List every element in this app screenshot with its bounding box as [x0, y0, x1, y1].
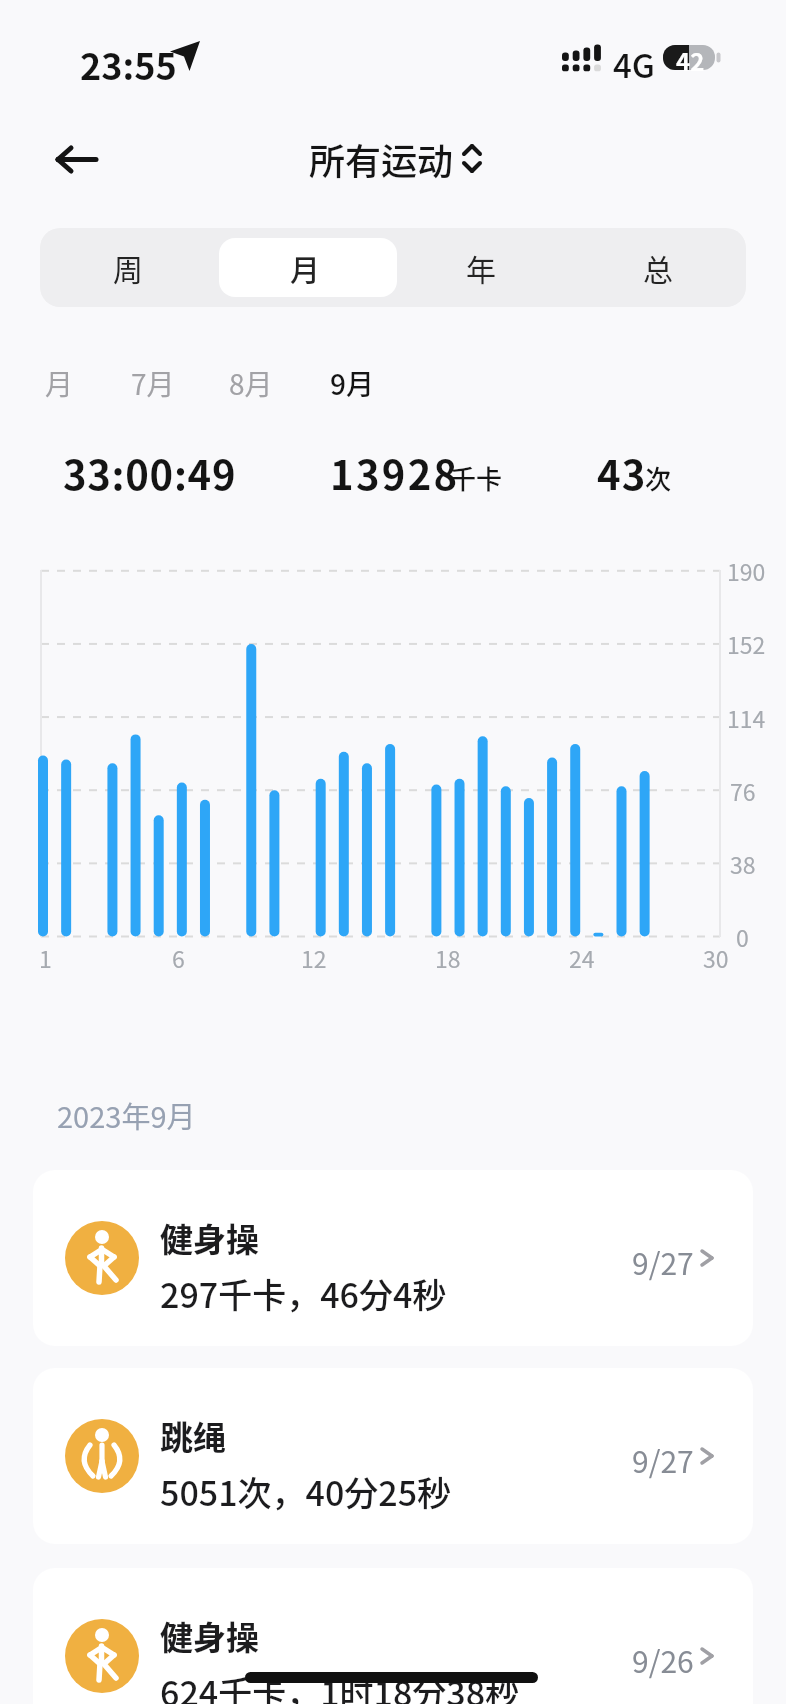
staticText: 1 — [39, 941, 52, 974]
staticText: 9/26 — [632, 1638, 694, 1681]
staticText: 年 — [466, 246, 496, 289]
staticText: 6 — [172, 941, 185, 974]
staticText: 38 — [730, 847, 756, 880]
button[interactable] — [45, 134, 107, 184]
button[interactable]: 月 — [30, 352, 90, 408]
staticText: 297千卡，46分4秒 — [160, 1269, 447, 1318]
button[interactable]: 总 — [570, 228, 746, 307]
staticText: 次 — [645, 459, 672, 497]
staticText: 12 — [301, 941, 327, 974]
staticText: 所有运动 — [309, 133, 454, 185]
staticText: 152 — [727, 627, 766, 660]
button[interactable]: 健身操 — [33, 1170, 753, 1346]
staticText: 9/27 — [632, 1240, 694, 1283]
staticText: 9/27 — [632, 1438, 694, 1481]
staticText: 190 — [727, 554, 766, 587]
staticText: 42 — [676, 43, 705, 78]
staticText: 2023年9月 — [57, 1094, 196, 1136]
staticText: 8月 — [229, 363, 273, 404]
staticText: 18 — [435, 941, 461, 974]
button[interactable]: 7月 — [120, 352, 190, 408]
staticText: 24 — [569, 941, 595, 974]
staticText: 总 — [643, 246, 673, 289]
staticText: 30 — [703, 941, 729, 974]
button[interactable]: 所有运动 — [300, 132, 490, 186]
staticText: 33:00:49 — [63, 444, 237, 502]
staticText: 0 — [736, 920, 749, 953]
button[interactable]: 跳绳 — [33, 1368, 753, 1544]
staticText: 23:55 — [80, 38, 177, 90]
button[interactable]: 健身操 — [33, 1568, 753, 1704]
staticText: 624千卡，1时18分38秒 — [160, 1667, 520, 1704]
staticText: 7月 — [131, 363, 175, 404]
staticText: 13928 — [330, 444, 460, 502]
staticText: 健身操 — [160, 1612, 259, 1660]
staticText: 周 — [113, 246, 143, 289]
staticText: 5051次，40分25秒 — [160, 1467, 452, 1516]
staticText: 千卡 — [450, 459, 503, 497]
staticText: 76 — [730, 774, 756, 807]
staticText: 月 — [290, 246, 320, 289]
staticText: 跳绳 — [160, 1412, 226, 1460]
button[interactable]: 年 — [393, 228, 569, 307]
staticText: 114 — [727, 701, 766, 734]
staticText: 月 — [45, 363, 74, 404]
button[interactable]: 9月 — [319, 352, 389, 408]
staticText: 4G — [613, 40, 655, 88]
staticText: 9月 — [330, 363, 374, 404]
staticText: 健身操 — [160, 1214, 259, 1262]
button[interactable]: 8月 — [218, 352, 288, 408]
staticText: 43 — [597, 444, 647, 502]
button[interactable]: 月 — [217, 228, 393, 307]
button[interactable]: 周 — [40, 228, 216, 307]
